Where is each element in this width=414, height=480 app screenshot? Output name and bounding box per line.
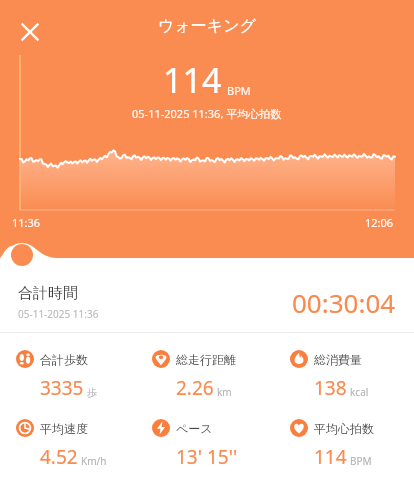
button[interactable]: Close	[8, 10, 52, 54]
staticText: 総消費量	[314, 352, 362, 367]
staticText: 11:36	[12, 215, 41, 230]
button[interactable]: 平均心拍数	[276, 419, 414, 470]
staticText: 05-11-2025 11:36, 平均心拍数	[132, 106, 282, 121]
button[interactable]: ペース	[138, 419, 276, 470]
staticText: 総走行距離	[176, 352, 236, 367]
staticText: Km/h	[81, 454, 107, 468]
staticText: 114	[163, 57, 222, 103]
staticText: BPM	[350, 454, 372, 468]
button[interactable]: 総走行距離	[138, 350, 276, 401]
button[interactable]: 合計時間	[0, 272, 414, 332]
staticText: 138	[314, 375, 347, 401]
staticText: 4.52	[40, 444, 78, 470]
staticText: ウォーキング	[158, 16, 256, 36]
staticText: 3335	[40, 375, 84, 401]
staticText: 歩	[87, 386, 97, 399]
staticText: BPM	[227, 83, 251, 98]
staticText: 合計歩数	[40, 352, 88, 367]
staticText: 05-11-2025 11:36	[18, 307, 99, 321]
staticText: 13' 15''	[176, 444, 238, 470]
button[interactable]: 平均速度	[0, 419, 138, 470]
staticText: 114	[314, 444, 347, 470]
button[interactable]: 総消費量	[276, 350, 414, 401]
staticText: ペース	[176, 421, 213, 436]
staticText: 00:30:04	[292, 285, 396, 320]
staticText: 2.26	[176, 375, 214, 401]
staticText: 平均速度	[40, 421, 88, 436]
staticText: km	[217, 385, 232, 399]
staticText: 12:06	[365, 215, 394, 230]
staticText: 合計時間	[18, 284, 78, 303]
staticText: 平均心拍数	[314, 421, 374, 436]
button[interactable]: 合計歩数	[0, 350, 138, 401]
staticText: kcal	[350, 385, 369, 399]
